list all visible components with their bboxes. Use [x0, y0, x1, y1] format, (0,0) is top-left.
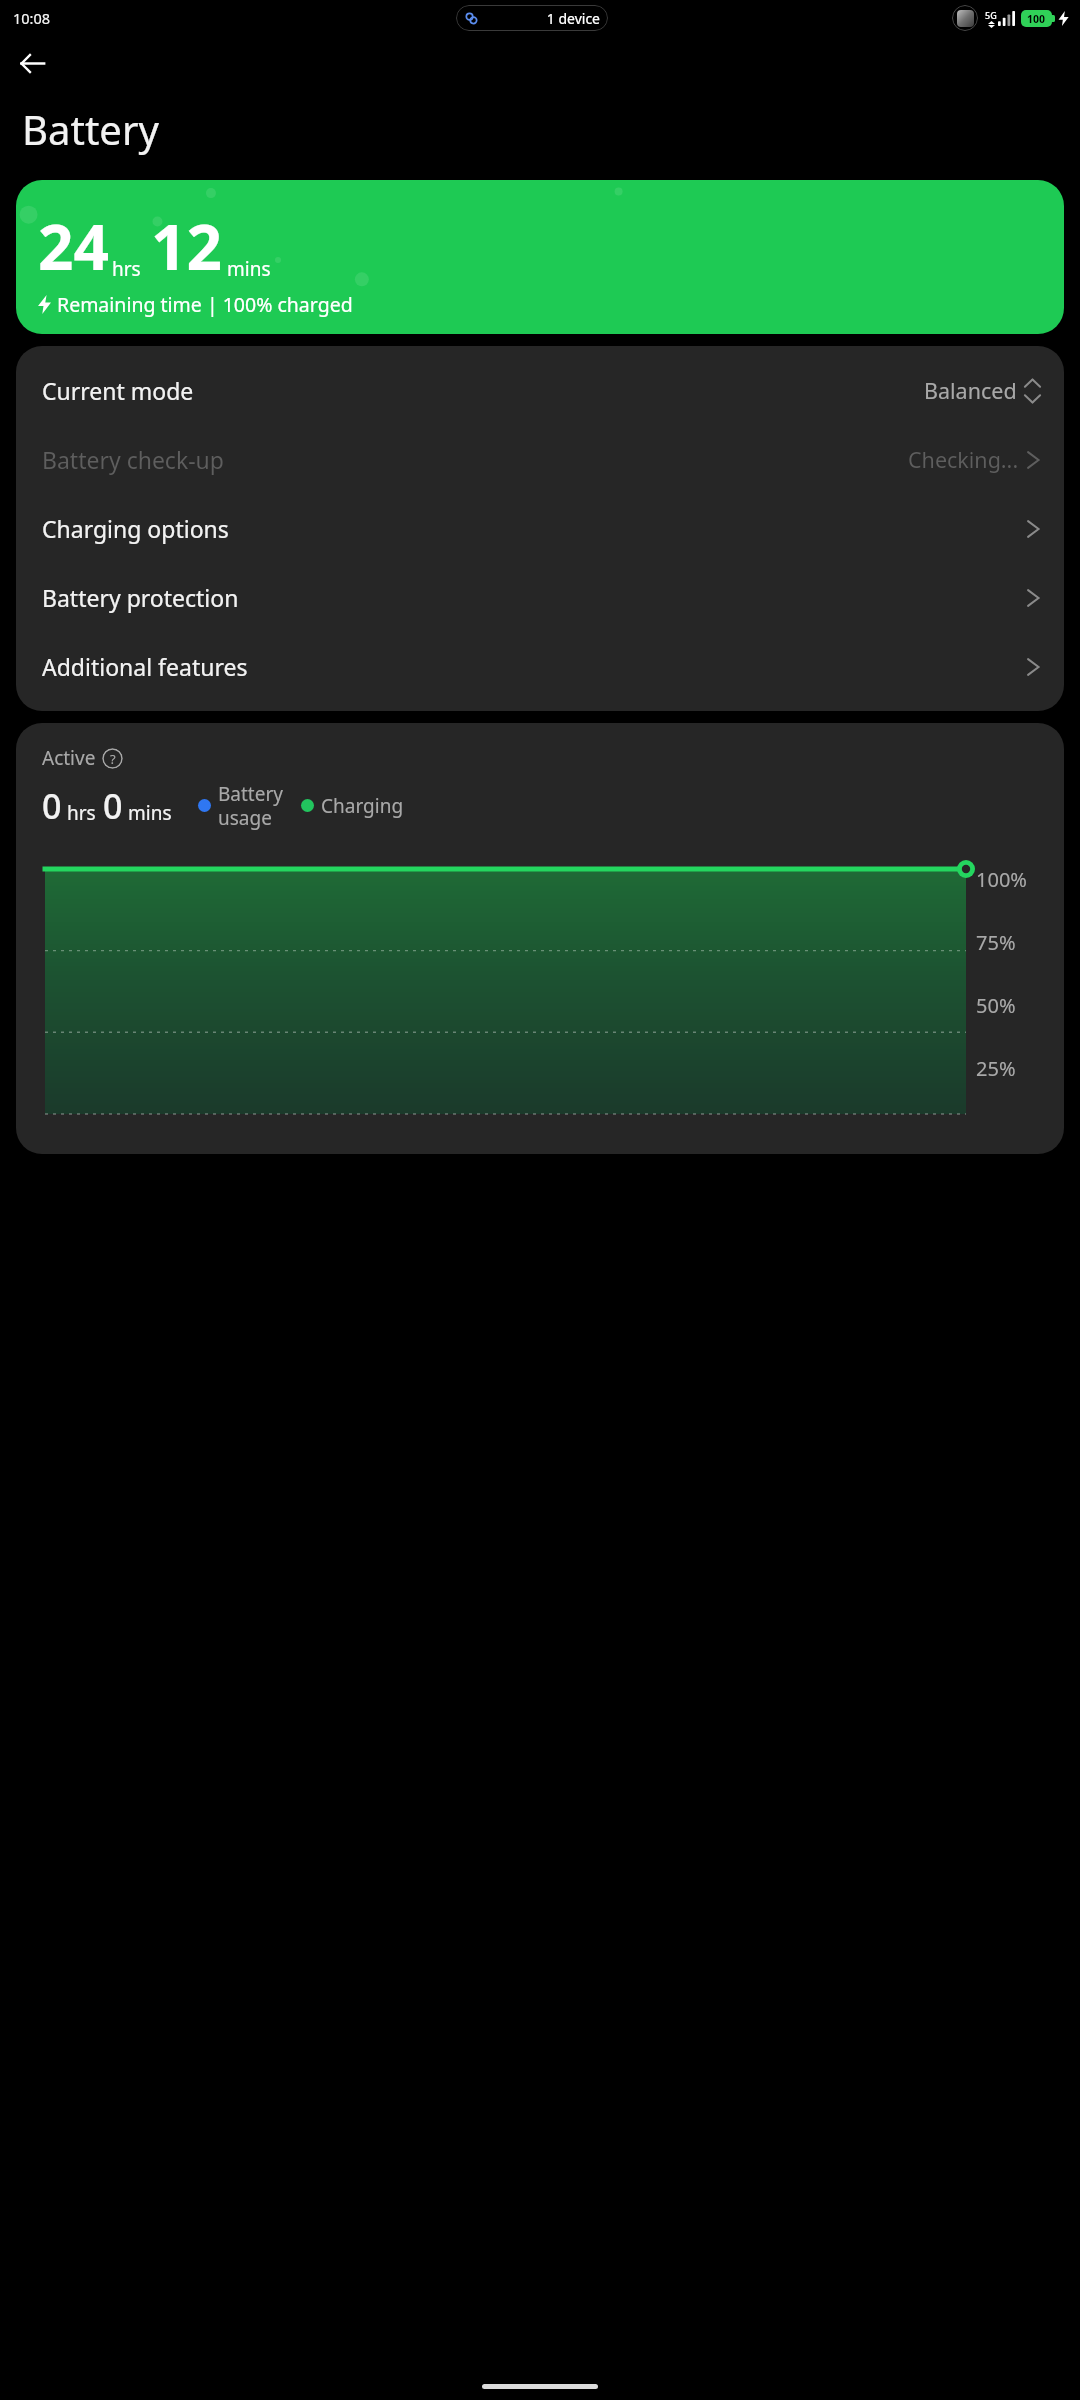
staticText: 50%	[976, 992, 1016, 1020]
staticText: Battery usage	[218, 781, 283, 830]
button[interactable]: 1 device	[456, 5, 608, 31]
button[interactable]: Battery check-up	[16, 425, 1064, 494]
staticText: Battery	[22, 102, 159, 156]
staticText: Additional features	[42, 651, 1025, 682]
staticText: 0	[103, 783, 123, 829]
button[interactable]: Charging options	[16, 494, 1064, 563]
staticText: Checking...	[908, 445, 1019, 474]
staticText: Balanced	[924, 376, 1017, 405]
button[interactable]: Help about active time	[102, 748, 123, 769]
staticText: 5G	[985, 9, 997, 21]
staticText: 0	[42, 783, 62, 829]
staticText: mins	[227, 256, 271, 282]
button[interactable]: Profile	[952, 5, 978, 31]
staticText: hrs	[112, 256, 141, 282]
staticText: Battery check-up	[42, 444, 908, 475]
staticText: Battery protection	[42, 582, 1025, 613]
staticText: 75%	[976, 929, 1016, 957]
button[interactable]: Back	[8, 39, 56, 87]
staticText: Charging	[321, 793, 404, 819]
button[interactable]: 24	[16, 180, 1064, 334]
staticText: Remaining time | 100% charged	[57, 291, 353, 318]
button[interactable]: Current mode	[16, 356, 1064, 425]
staticText: 12	[151, 204, 222, 288]
staticText: mins	[128, 800, 172, 826]
staticText: 100%	[976, 866, 1027, 894]
staticText: Active	[42, 745, 96, 771]
staticText: 25%	[976, 1055, 1016, 1083]
staticText: 1 device	[483, 9, 600, 28]
staticText: hrs	[67, 800, 96, 826]
staticText: 24	[38, 204, 109, 288]
staticText: 100	[1027, 12, 1046, 26]
staticText: Charging options	[42, 513, 1025, 544]
button[interactable]: Additional features	[16, 632, 1064, 701]
button[interactable]: Battery protection	[16, 563, 1064, 632]
staticText: ?	[110, 750, 116, 768]
staticText: 10:08	[13, 8, 51, 28]
staticText: Current mode	[42, 375, 924, 406]
